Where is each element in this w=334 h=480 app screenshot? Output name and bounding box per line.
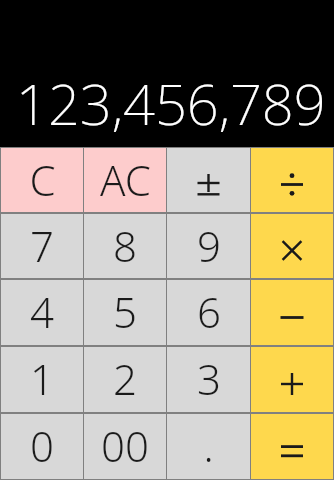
staticText: 0 <box>30 417 54 474</box>
staticText: 1 <box>30 350 54 407</box>
button[interactable]: 5 <box>84 280 166 345</box>
staticText: 6 <box>197 283 221 340</box>
button[interactable]: Divide <box>251 148 333 212</box>
staticText: 123,456,789 <box>16 65 326 141</box>
button[interactable]: 00 <box>84 414 166 479</box>
button[interactable]: Equals <box>251 414 333 479</box>
button[interactable]: 2 <box>84 347 166 412</box>
button[interactable]: C <box>1 148 83 212</box>
staticText: 4 <box>30 283 54 340</box>
staticText: 5 <box>113 283 137 340</box>
button[interactable]: . <box>167 414 250 479</box>
staticText: 3 <box>197 350 221 407</box>
staticText: 2 <box>113 350 137 407</box>
button[interactable]: 1 <box>1 347 83 412</box>
button[interactable]: Subtract <box>251 280 333 345</box>
staticText: 9 <box>197 217 221 274</box>
staticText: C <box>29 151 56 208</box>
button[interactable]: 9 <box>167 214 250 278</box>
staticText: . <box>203 417 214 474</box>
staticText: 8 <box>113 217 137 274</box>
button[interactable]: Multiply <box>251 214 333 278</box>
button[interactable]: 7 <box>1 214 83 278</box>
button[interactable]: 3 <box>167 347 250 412</box>
button[interactable]: 4 <box>1 280 83 345</box>
staticText: AC <box>100 151 151 208</box>
staticText: 00 <box>101 417 149 474</box>
button[interactable]: 0 <box>1 414 83 479</box>
button[interactable]: 8 <box>84 214 166 278</box>
button[interactable]: AC <box>84 148 166 212</box>
button[interactable]: Plus minus <box>167 148 250 212</box>
button[interactable]: 6 <box>167 280 250 345</box>
staticText: 7 <box>30 217 54 274</box>
button[interactable]: Add <box>251 347 333 412</box>
